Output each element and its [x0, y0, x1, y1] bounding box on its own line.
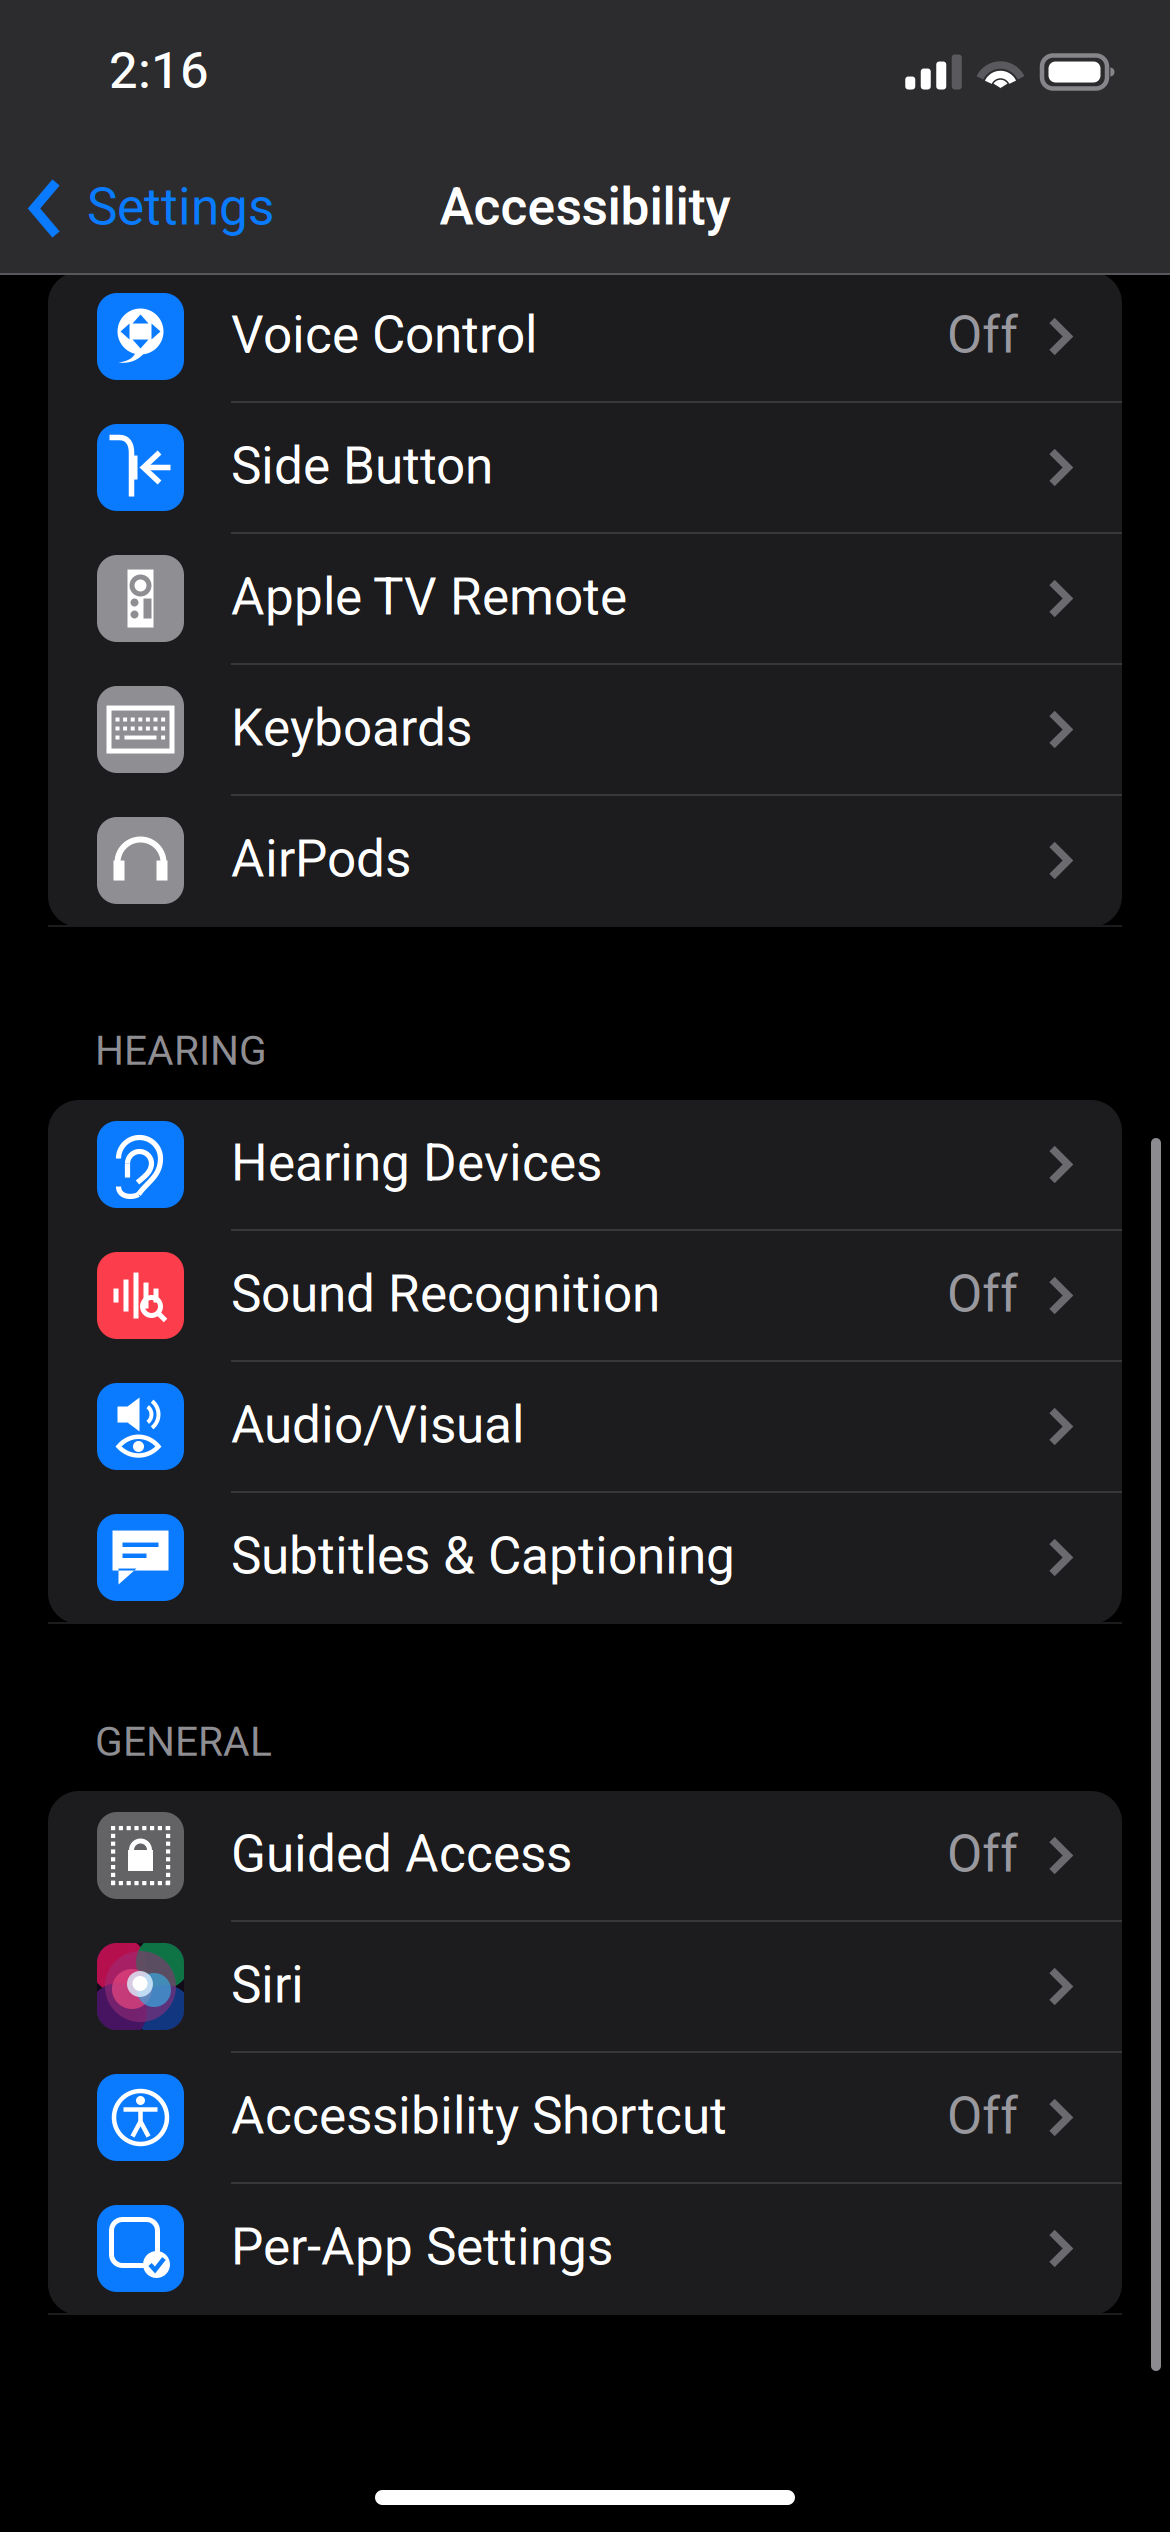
staticText: Hearing Devices — [231, 1127, 602, 1202]
button[interactable]: Per-App Settings — [48, 2184, 1122, 2315]
staticText: Keyboards — [231, 692, 472, 767]
staticText: Off — [947, 1818, 1018, 1893]
staticText: Off — [947, 1258, 1018, 1333]
button[interactable]: AirPods — [48, 796, 1122, 927]
button[interactable]: Siri — [48, 1922, 1122, 2053]
staticText: Sound Recognition — [231, 1258, 660, 1333]
staticText: Per-App Settings — [231, 2211, 613, 2286]
staticText: Apple TV Remote — [231, 561, 627, 636]
staticText: Off — [947, 299, 1018, 374]
staticText: Accessibility Shortcut — [231, 2080, 727, 2155]
staticText: Off — [947, 2080, 1018, 2155]
button[interactable]: Audio/Visual — [48, 1362, 1122, 1493]
staticText: Voice Control — [231, 299, 537, 374]
staticText: AirPods — [231, 823, 411, 898]
button[interactable]: Voice Control — [48, 272, 1122, 403]
button[interactable]: Side Button — [48, 403, 1122, 534]
staticText: HEARING — [95, 1022, 267, 1082]
button[interactable]: Settings — [0, 137, 294, 280]
staticText: GENERAL — [95, 1713, 272, 1773]
staticText: Side Button — [231, 430, 493, 505]
button[interactable]: Accessibility Shortcut — [48, 2053, 1122, 2184]
staticText: Subtitles & Captioning — [231, 1520, 735, 1595]
button[interactable]: Keyboards — [48, 665, 1122, 796]
button[interactable]: Subtitles & Captioning — [48, 1493, 1122, 1624]
button[interactable]: Sound Recognition — [48, 1231, 1122, 1362]
staticText: 2:16 — [109, 35, 209, 109]
staticText: Siri — [231, 1949, 304, 2024]
staticText: Guided Access — [231, 1818, 572, 1893]
button[interactable]: Apple TV Remote — [48, 534, 1122, 665]
staticText: Settings — [87, 171, 274, 246]
staticText: Accessibility — [439, 171, 730, 246]
button[interactable]: Guided Access — [48, 1791, 1122, 1922]
staticText: Audio/Visual — [231, 1389, 524, 1464]
button[interactable]: Hearing Devices — [48, 1100, 1122, 1231]
